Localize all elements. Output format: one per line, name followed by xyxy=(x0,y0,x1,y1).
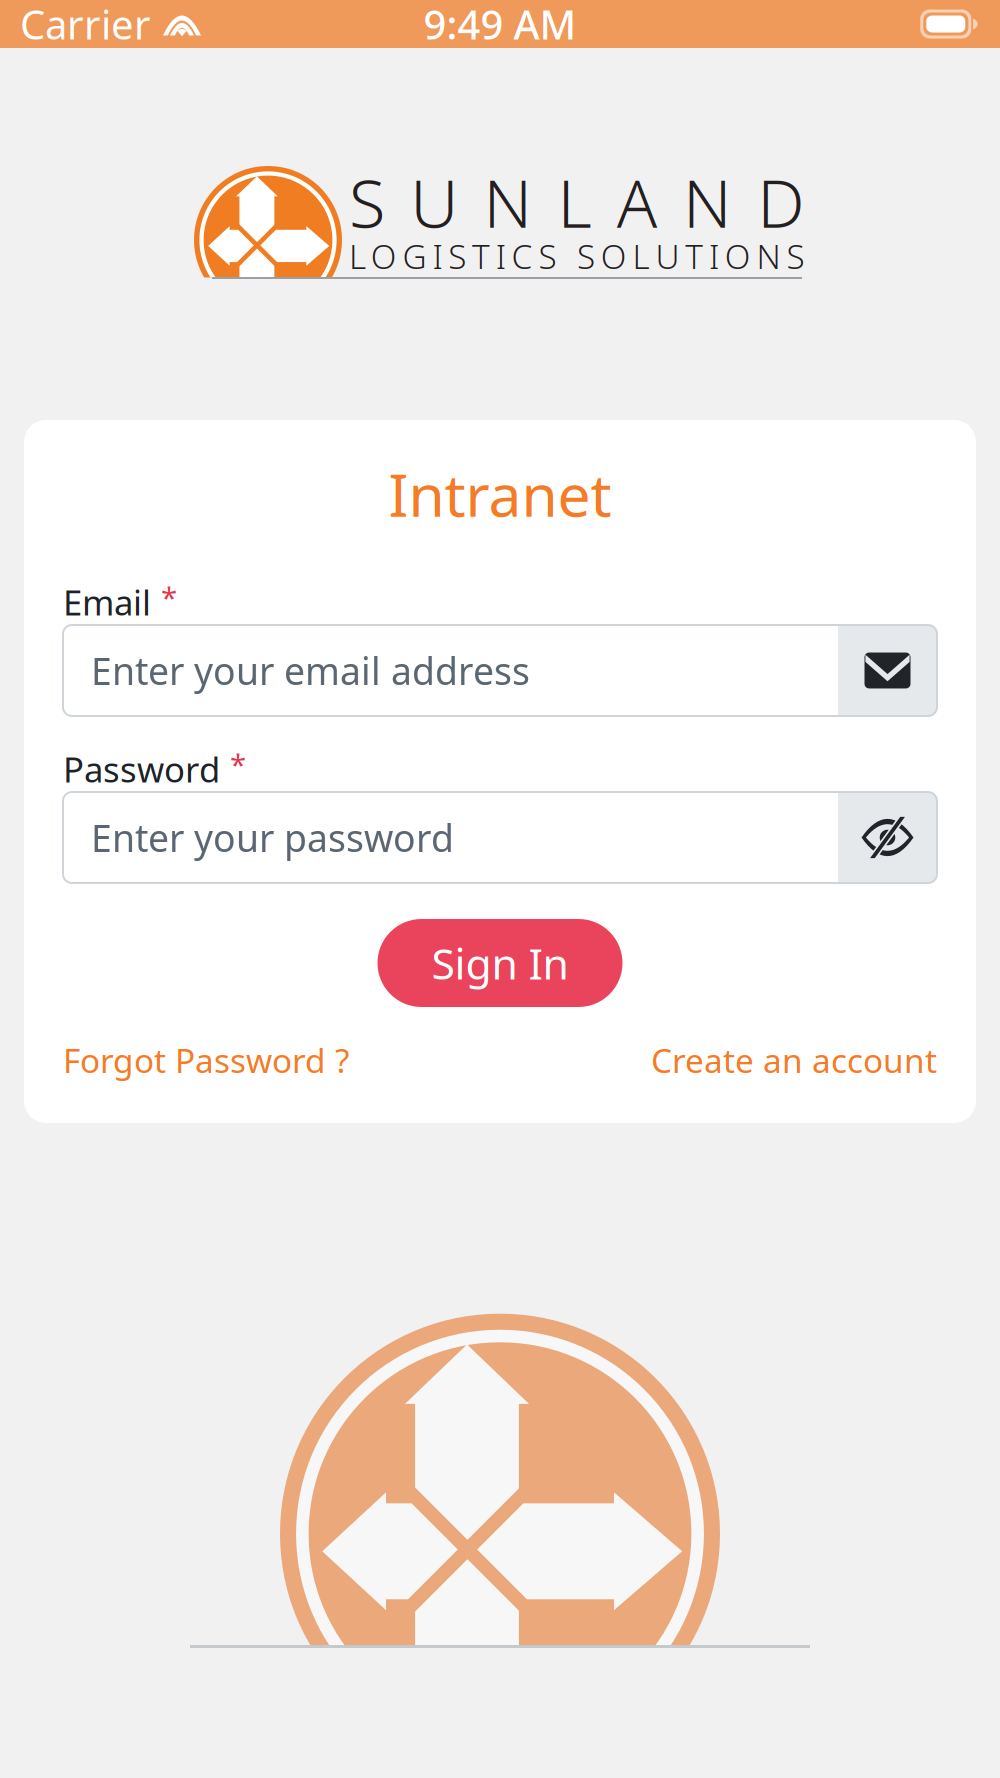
staticText: * xyxy=(161,577,177,616)
button[interactable]: Sign In xyxy=(377,919,622,1007)
button[interactable]: Email xyxy=(838,625,937,716)
staticText: Enter your password xyxy=(91,813,454,862)
staticText: Intranet xyxy=(388,455,611,533)
staticText: Create an account xyxy=(651,1038,937,1082)
staticText: Email xyxy=(63,579,151,625)
button[interactable]: Create an account xyxy=(651,1039,937,1081)
staticText: Password xyxy=(63,746,220,792)
staticText: Enter your email address xyxy=(91,646,530,695)
staticText: 9:49 AM xyxy=(423,0,576,50)
staticText: LOGISTICS SOLUTIONS xyxy=(349,234,804,278)
staticText: Carrier xyxy=(20,0,151,50)
staticText: S U N L A N D xyxy=(349,158,804,246)
button[interactable]: Show password xyxy=(838,792,937,883)
staticText: Forgot Password ? xyxy=(63,1038,349,1082)
staticText: * xyxy=(230,744,246,783)
button[interactable]: Forgot Password ? xyxy=(63,1039,349,1081)
staticText: Sign In xyxy=(431,935,568,991)
